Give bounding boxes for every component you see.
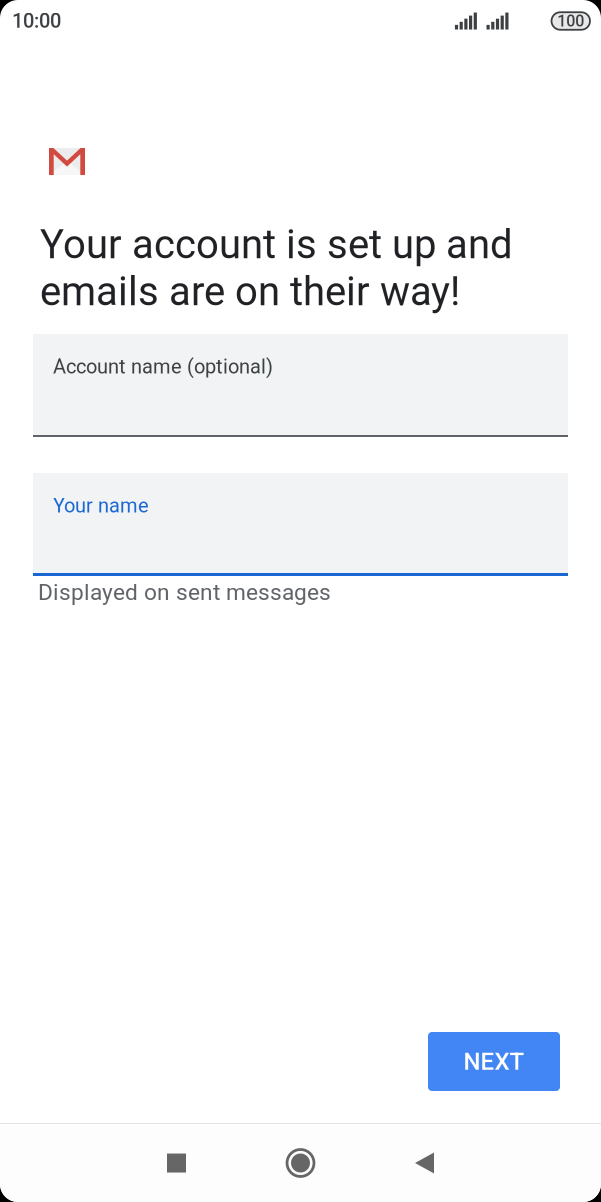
button[interactable]: Recent apps <box>114 1124 238 1202</box>
staticText: 100 <box>557 12 584 30</box>
staticText: NEXT <box>463 1047 524 1075</box>
staticText: Your account is set up and <box>40 221 513 268</box>
button[interactable]: Account name (optional) <box>33 334 568 437</box>
staticText: emails are on their way! <box>40 268 460 315</box>
button[interactable]: Home <box>238 1124 362 1202</box>
button[interactable]: Your name <box>33 473 568 576</box>
staticText: 10:00 <box>12 9 61 33</box>
staticText: Your name <box>53 494 149 517</box>
staticText: Displayed on sent messages <box>38 579 331 606</box>
button[interactable]: NEXT <box>428 1032 560 1091</box>
staticText: Account name (optional) <box>53 355 273 378</box>
button[interactable]: Back <box>362 1124 486 1202</box>
